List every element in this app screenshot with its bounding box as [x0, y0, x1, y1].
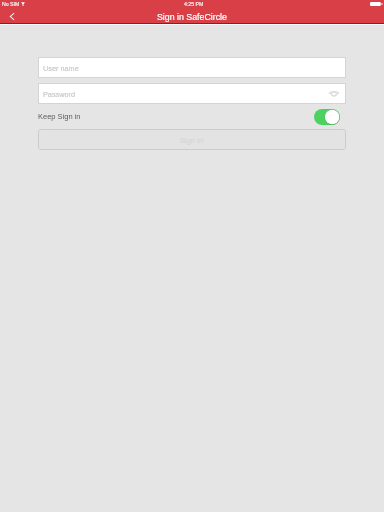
button[interactable]: Show password — [327, 87, 341, 101]
staticText: Keep Sign in — [38, 112, 81, 120]
staticText: User name — [43, 64, 79, 72]
staticText: Sign in SafeCircle — [157, 12, 227, 22]
staticText: Password — [43, 90, 76, 98]
button[interactable]: Sign in — [38, 129, 346, 150]
staticText: Sign in — [180, 136, 204, 144]
button[interactable]: User name — [38, 57, 346, 78]
button[interactable]: Password — [38, 83, 346, 104]
staticText: No SIM — [2, 1, 20, 7]
button[interactable]: Keep Sign in — [314, 109, 340, 125]
staticText: 4:25 PM — [184, 1, 204, 7]
button[interactable]: Back — [0, 10, 24, 23]
